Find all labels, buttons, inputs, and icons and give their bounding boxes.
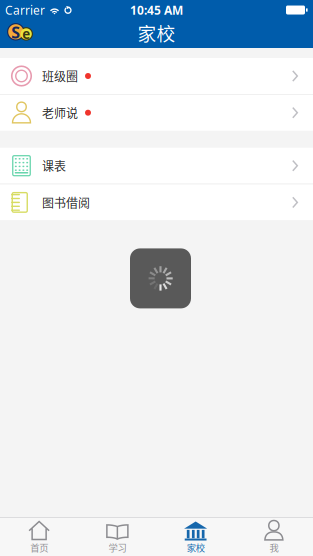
staticText: 家校 (137, 19, 175, 46)
button[interactable]: 课表 (0, 148, 313, 184)
staticText: 班级圈 (42, 67, 78, 85)
staticText: 家校 (187, 541, 205, 554)
staticText: 课表 (42, 157, 66, 174)
button[interactable]: 学习 (78, 518, 156, 556)
button[interactable]: 首页 (0, 518, 78, 556)
button[interactable]: 老师说 (0, 95, 313, 131)
button[interactable]: Home (0, 20, 38, 48)
staticText: 学习 (108, 541, 126, 554)
staticText: 10:45 AM (130, 2, 183, 18)
button[interactable]: 图书借阅 (0, 184, 313, 220)
staticText: 我 (269, 541, 278, 554)
staticText: 首页 (30, 541, 48, 554)
staticText: e (22, 25, 30, 43)
staticText: Carrier (5, 2, 45, 18)
staticText: 图书借阅 (42, 194, 90, 211)
staticText: S (11, 22, 20, 43)
button[interactable]: 家校 (156, 518, 235, 556)
button[interactable]: 班级圈 (0, 58, 313, 94)
staticText: 老师说 (42, 104, 78, 121)
button[interactable]: 我 (235, 518, 313, 556)
